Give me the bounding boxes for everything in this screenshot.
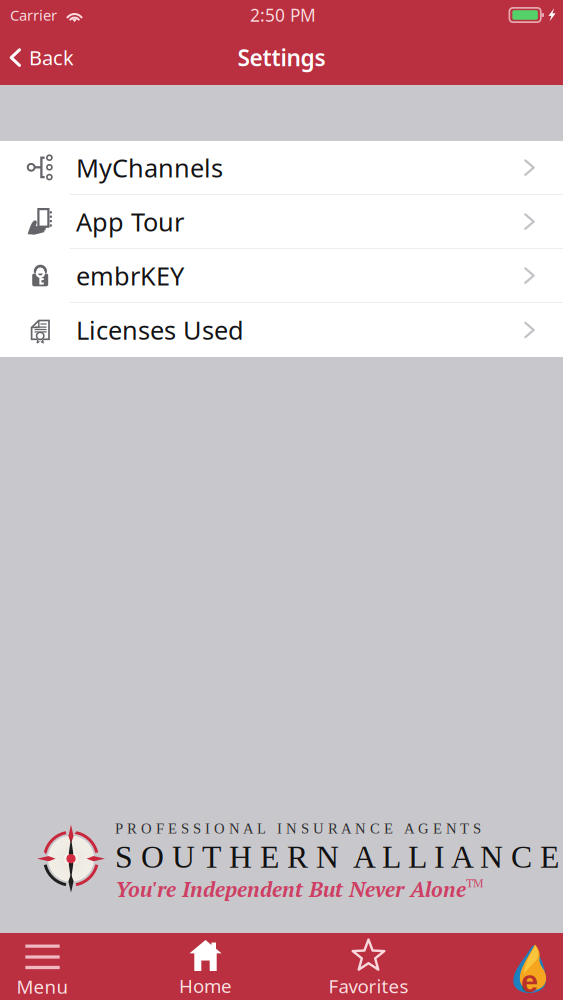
staticText: App Tour <box>76 205 184 238</box>
button[interactable]: MyChannels <box>0 141 563 195</box>
staticText: You're Independent But Never Alone <box>115 875 466 903</box>
staticText: Favorites <box>328 974 408 998</box>
staticText: 2:50 PM <box>250 3 316 26</box>
button[interactable]: Licenses Used <box>0 303 563 357</box>
staticText: embrKEY <box>76 259 184 292</box>
staticText: TM <box>466 875 483 891</box>
staticText: Home <box>179 973 232 998</box>
staticText: e <box>521 964 538 999</box>
button[interactable]: Menu <box>0 933 102 1000</box>
staticText: Settings <box>237 42 325 72</box>
staticText: Carrier <box>10 5 57 25</box>
button[interactable]: Home <box>145 933 265 1000</box>
staticText: Menu <box>16 974 68 999</box>
button[interactable]: Favorites <box>308 933 428 1000</box>
staticText: Licenses Used <box>76 313 244 347</box>
staticText: MyChannels <box>76 151 223 184</box>
staticText: P R O F E S S I O N A L I N S U R A N C … <box>115 820 481 836</box>
button[interactable]: Back <box>0 32 86 82</box>
staticText: Back <box>29 44 74 71</box>
button[interactable]: embrKEY <box>0 249 563 303</box>
staticText: S O U T H E R N A L L I A N C E <box>115 840 559 875</box>
button[interactable]: embr <box>469 933 563 1000</box>
button[interactable]: App Tour <box>0 195 563 249</box>
